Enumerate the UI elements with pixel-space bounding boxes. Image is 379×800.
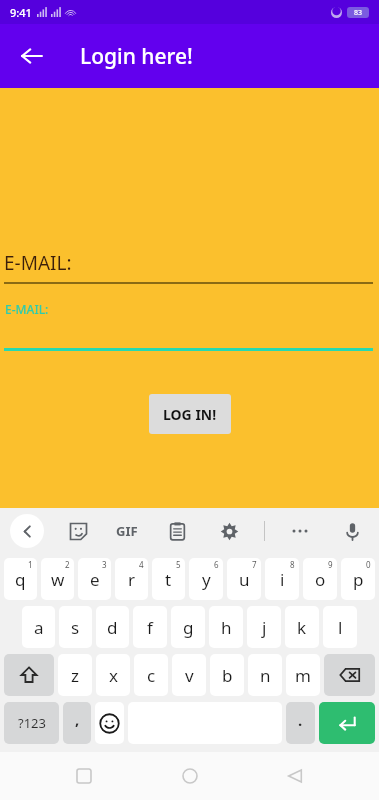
button[interactable]: k [285,606,319,648]
button[interactable]: Back [8,32,56,80]
button[interactable]: r [115,558,148,600]
button[interactable]: i [265,558,299,600]
staticText: k [297,616,307,639]
button[interactable]: GIF [112,518,142,544]
button[interactable]: o [303,558,337,600]
button[interactable]: . [286,702,315,744]
button[interactable]: Home [168,754,212,798]
staticText: . [298,710,303,730]
button[interactable]: y [189,558,223,600]
staticText: b [222,664,233,687]
staticText: Login here! [80,42,193,71]
staticText: h [221,616,232,639]
staticText: d [107,616,118,639]
staticText: ?123 [18,714,46,732]
button[interactable]: j [247,606,281,648]
staticText: , [75,709,80,729]
button[interactable]: q [4,558,37,600]
staticText: 7 [252,559,257,570]
staticText: 2 [65,559,70,570]
button[interactable]: Stickers [61,514,95,548]
staticText: p [353,568,364,591]
staticText: j [262,616,267,639]
button[interactable]: , [63,702,91,744]
button[interactable]: t [152,558,185,600]
button[interactable]: ?123 [4,702,59,744]
staticText: 83 [354,8,363,18]
staticText: LOG IN! [163,405,217,424]
button[interactable]: h [209,606,243,648]
button[interactable]: z [58,654,92,696]
button[interactable]: b [210,654,244,696]
staticText: 9 [328,559,333,570]
staticText: z [71,664,79,687]
button[interactable]: v [172,654,206,696]
staticText: t [165,568,172,591]
button[interactable]: Shift [4,654,54,696]
staticText: 9:41 [10,5,32,20]
button[interactable]: LOG IN! [149,394,231,434]
button[interactable]: Back [10,514,44,548]
staticText: a [34,616,44,639]
button[interactable]: Enter [319,702,375,744]
button[interactable]: g [171,606,205,648]
button[interactable]: x [96,654,130,696]
staticText: 3 [102,559,107,570]
staticText: f [147,616,153,639]
staticText: u [239,568,250,591]
button[interactable]: Clipboard [160,514,194,548]
staticText: E-MAIL: [5,301,49,317]
button[interactable]: m [286,654,320,696]
button[interactable]: u [227,558,261,600]
staticText: e [90,568,100,591]
staticText: r [128,568,136,591]
staticText: n [260,664,271,687]
staticText: x [109,664,118,687]
button[interactable]: p [341,558,375,600]
button[interactable]: Voice input [335,514,369,548]
button[interactable]: l [323,606,357,648]
button[interactable]: n [248,654,282,696]
button[interactable]: d [96,606,129,648]
staticText: E-MAIL: [4,250,72,276]
staticText: 1 [28,559,33,570]
staticText: 8 [290,559,295,570]
button[interactable]: Settings [212,514,246,548]
staticText: c [147,664,156,687]
button[interactable]: Back [273,754,317,798]
staticText: s [71,616,80,639]
staticText: y [202,568,211,591]
staticText: m [295,664,311,687]
staticText: q [15,568,26,591]
staticText: g [183,616,194,639]
staticText: i [280,568,285,591]
staticText: w [51,568,65,591]
staticText: l [338,616,343,639]
button[interactable]: Backspace [324,654,375,696]
staticText: 6 [214,559,219,570]
button[interactable]: c [134,654,168,696]
staticText: v [185,664,194,687]
button[interactable]: More options [283,514,317,548]
staticText: 0 [366,559,371,570]
staticText: o [315,568,326,591]
button[interactable]: Recent apps [62,754,106,798]
button[interactable]: w [41,558,74,600]
button[interactable]: a [22,606,55,648]
button[interactable]: s [59,606,92,648]
staticText: 4 [139,559,144,570]
button[interactable]: e [78,558,111,600]
staticText: 5 [176,559,181,570]
button[interactable]: f [133,606,167,648]
button[interactable]: Emoji [95,702,124,744]
staticText: GIF [116,522,138,540]
